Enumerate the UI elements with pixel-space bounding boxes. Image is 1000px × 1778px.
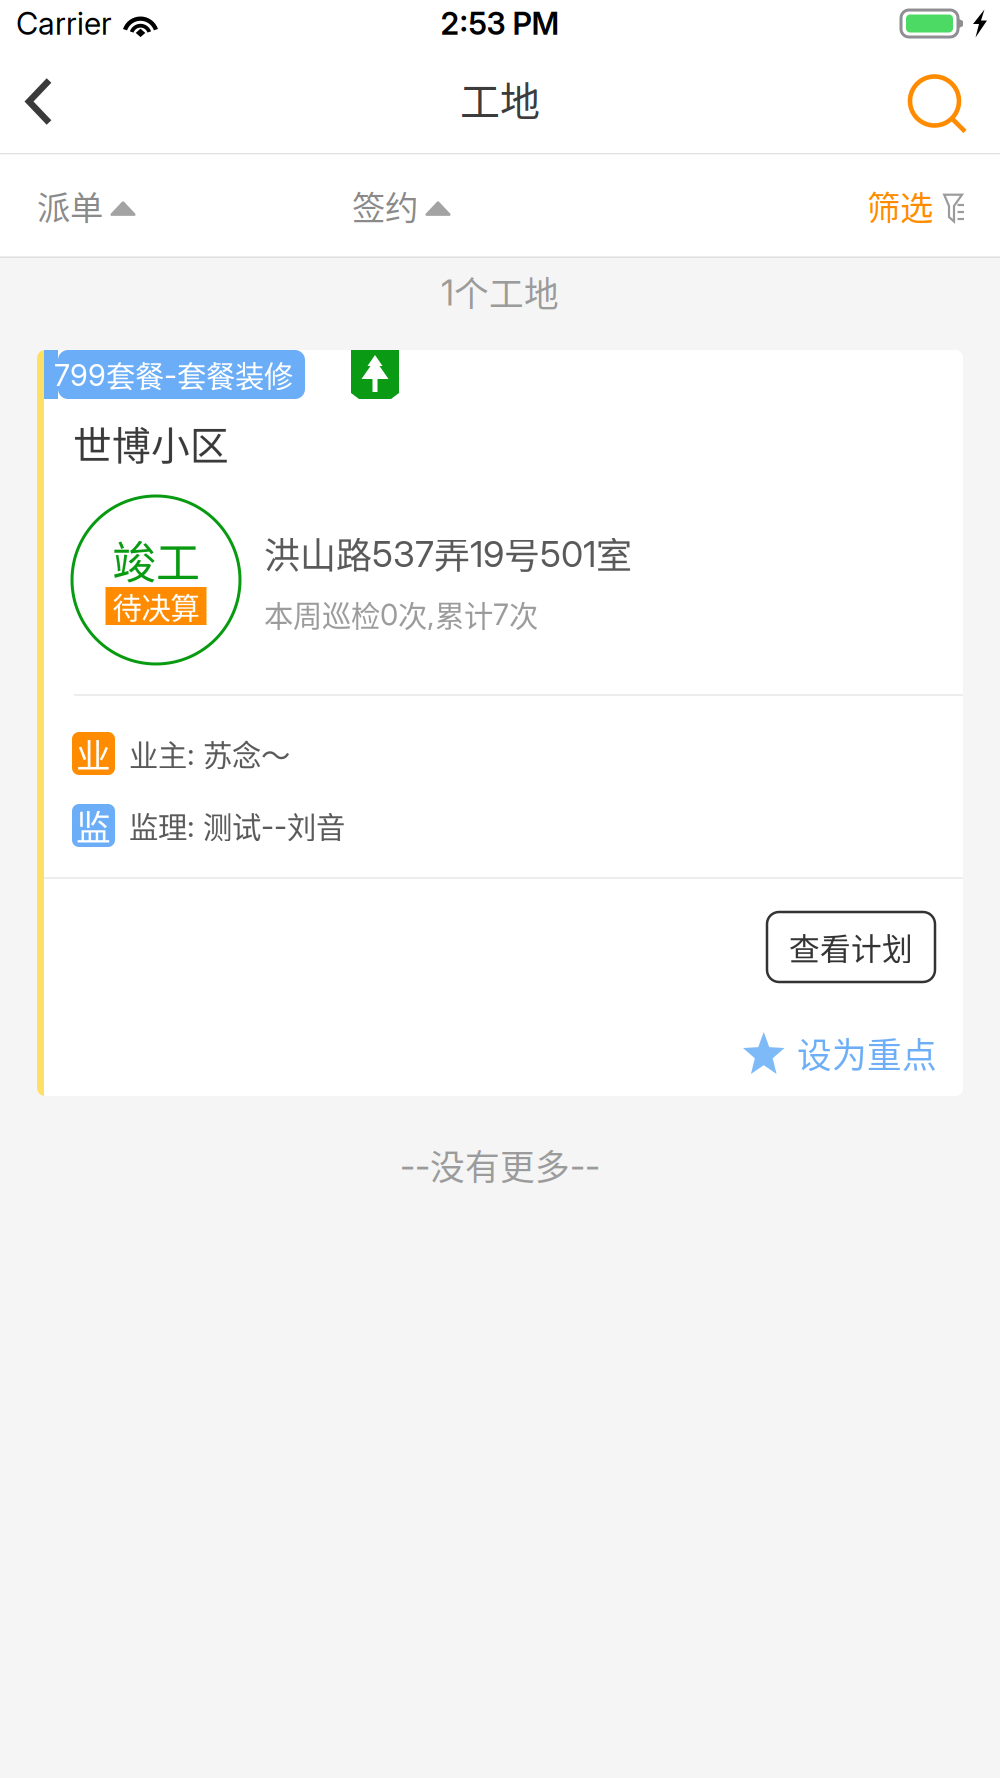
staticText: 监	[76, 800, 111, 851]
staticText: 洪山路537弄19号501室	[264, 527, 632, 579]
staticText: 监理: 测试--刘音	[129, 804, 345, 847]
button[interactable]: Search	[884, 56, 1000, 153]
staticText: 工地	[460, 69, 540, 127]
button[interactable]: 查看计划	[767, 912, 935, 982]
staticText: 799套餐-套餐装修	[54, 353, 293, 396]
staticText: 派单	[37, 181, 103, 230]
staticText: 2:53 PM	[440, 5, 559, 42]
staticText: 待决算	[112, 585, 199, 627]
staticText: 世博小区	[73, 415, 229, 471]
staticText: 业主: 苏念～	[129, 732, 290, 775]
staticText: 业	[76, 728, 111, 779]
staticText: 签约	[352, 181, 418, 230]
button[interactable]: 签约	[315, 154, 630, 256]
staticText: 查看计划	[789, 925, 913, 969]
staticText: 设为重点	[797, 1028, 937, 1078]
staticText: Carrier	[16, 5, 112, 42]
button[interactable]: 派单	[0, 154, 315, 256]
button[interactable]: 设为重点	[743, 1027, 963, 1079]
button[interactable]: 筛选	[849, 154, 1000, 256]
staticText: 筛选	[867, 181, 933, 230]
staticText: 本周巡检0次,累计7次	[264, 593, 538, 635]
staticText: 竣工	[112, 528, 200, 591]
staticText: --没有更多--	[400, 1140, 600, 1190]
button[interactable]: Back	[0, 56, 85, 153]
staticText: 1个工地	[441, 267, 559, 317]
